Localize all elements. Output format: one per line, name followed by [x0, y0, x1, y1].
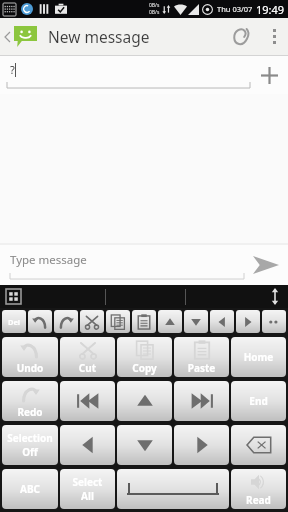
- button[interactable]: down: [184, 310, 208, 333]
- button[interactable]: bksp: [231, 425, 286, 465]
- button[interactable]: left: [60, 425, 115, 465]
- staticText: New message: [48, 26, 150, 47]
- button[interactable]: Resize keyboard: [270, 288, 280, 305]
- button[interactable]: redo: [54, 310, 78, 333]
- staticText: End: [231, 394, 286, 408]
- button[interactable]: left: [210, 310, 234, 333]
- staticText: Redo: [2, 405, 58, 419]
- button[interactable]: Del: [2, 310, 26, 333]
- button[interactable]: up: [117, 381, 172, 421]
- staticText: Cut: [60, 361, 115, 375]
- staticText: Thu 03/07: [217, 4, 253, 14]
- button[interactable]: copy: [106, 310, 130, 333]
- button[interactable]: Cut: [60, 337, 115, 377]
- button[interactable]: dots: [262, 310, 286, 333]
- button[interactable]: Add recipient: [250, 56, 288, 94]
- staticText: 0B/s: [149, 2, 160, 9]
- button[interactable]: skipfwd: [174, 381, 229, 421]
- staticText: Paste: [174, 361, 229, 375]
- button[interactable]: Select All: [60, 469, 115, 509]
- staticText: Home: [231, 350, 286, 364]
- staticText: ABC: [2, 482, 58, 496]
- button[interactable]: paste: [132, 310, 156, 333]
- button[interactable]: right: [236, 310, 260, 333]
- staticText: Undo: [2, 361, 58, 375]
- button[interactable]: Attach: [222, 18, 260, 55]
- button[interactable]: Navigate up: [0, 18, 41, 55]
- button[interactable]: Selection Off: [2, 425, 58, 465]
- button[interactable]: Read: [231, 469, 286, 509]
- button[interactable]: ABC: [2, 469, 58, 509]
- button[interactable]: undo: [28, 310, 52, 333]
- button[interactable]: Keyboard layouts: [6, 289, 21, 304]
- button[interactable]: cut: [80, 310, 104, 333]
- button[interactable]: Paste: [174, 337, 229, 377]
- button[interactable]: Home: [231, 337, 286, 377]
- staticText: Type message: [10, 252, 87, 268]
- button[interactable]: up: [158, 310, 182, 333]
- staticText: Select All: [60, 475, 115, 503]
- button[interactable]: Type message: [10, 252, 244, 279]
- button[interactable]: Redo: [2, 381, 58, 421]
- staticText: Read: [231, 493, 286, 507]
- button[interactable]: Send: [244, 245, 288, 285]
- button[interactable]: skipback: [60, 381, 115, 421]
- staticText: Copy: [117, 361, 172, 375]
- button[interactable]: right: [174, 425, 229, 465]
- button[interactable]: End: [231, 381, 286, 421]
- button[interactable]: Copy: [117, 337, 172, 377]
- staticText: 0B/s: [149, 9, 160, 16]
- button[interactable]: More options: [260, 18, 288, 55]
- staticText: Selection Off: [2, 431, 58, 459]
- button[interactable]: Undo: [2, 337, 58, 377]
- staticText: 19:49: [256, 2, 285, 17]
- staticText: Del: [2, 317, 26, 327]
- staticText: ?: [10, 62, 15, 77]
- button[interactable]: space: [117, 469, 229, 509]
- button[interactable]: down: [117, 425, 172, 465]
